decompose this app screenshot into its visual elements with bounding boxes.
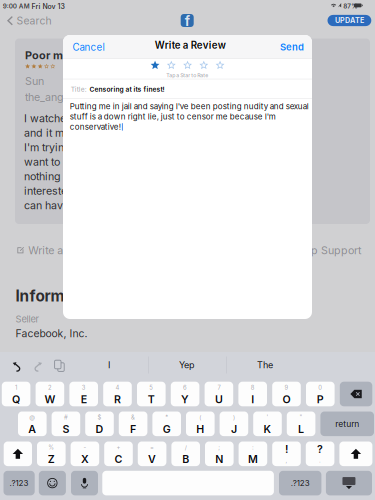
button[interactable]: I	[238, 382, 267, 406]
button[interactable]: !	[272, 441, 301, 466]
staticText: Fri Nov 13	[31, 2, 64, 11]
staticText: the_angry_birdman	[25, 91, 120, 104]
button[interactable]: Cancel	[72, 40, 104, 55]
button[interactable]: G	[152, 411, 181, 436]
button[interactable]: Send	[280, 40, 304, 55]
button[interactable]: P	[306, 382, 335, 406]
button[interactable]: B	[171, 441, 200, 466]
staticText: nothing changes, there has never been a …	[24, 170, 277, 183]
staticText: $	[97, 414, 101, 421]
staticText: 3	[82, 384, 86, 391]
button[interactable]: Delete	[340, 382, 372, 406]
button[interactable]: App Support	[297, 244, 361, 256]
staticText: (	[199, 414, 201, 421]
staticText: stuff is a down right lie, just to censo…	[70, 112, 276, 121]
button[interactable]: Shift	[4, 441, 32, 466]
staticText: J	[231, 423, 237, 436]
button[interactable]: Emoji	[39, 471, 66, 495]
staticText: R	[114, 393, 121, 406]
staticText: I	[108, 359, 110, 370]
button[interactable]: Y	[171, 382, 199, 406]
staticText: 7	[217, 384, 220, 391]
staticText: Tap a Star to Rate	[166, 72, 208, 78]
staticText: )	[233, 414, 235, 421]
staticText: conservative!	[70, 122, 121, 132]
staticText: !	[285, 442, 288, 455]
button[interactable]: D	[85, 411, 114, 436]
button[interactable]: Undo	[11, 359, 22, 372]
button[interactable]: I	[70, 352, 148, 378]
staticText: can have my account back if they steal i…	[24, 199, 264, 212]
staticText: ,	[285, 457, 287, 464]
button[interactable]: J	[220, 411, 248, 436]
staticText: .	[319, 457, 321, 464]
staticText: A	[28, 423, 36, 436]
staticText: and it made me wonder why there is no mo…	[24, 126, 275, 139]
button[interactable]: R	[103, 382, 132, 406]
staticText: "	[300, 414, 303, 421]
button[interactable]: Shift	[339, 441, 372, 466]
button[interactable]: V	[138, 441, 166, 466]
button[interactable]: Q	[2, 382, 30, 406]
button[interactable]: H	[186, 411, 215, 436]
staticText: return	[335, 419, 359, 429]
staticText: +	[116, 444, 120, 451]
button[interactable]: N	[205, 441, 234, 466]
button[interactable]: Z	[37, 441, 66, 466]
staticText: F	[130, 423, 136, 436]
staticText: V	[148, 453, 156, 466]
staticText: I watched a video on this app today and …	[24, 112, 283, 125]
staticText: &	[131, 414, 135, 421]
staticText: Putting me in jail and saying I've been …	[70, 101, 309, 111]
button[interactable]: Paste	[53, 359, 63, 370]
button[interactable]: The	[226, 352, 304, 378]
staticText: 9	[284, 384, 288, 391]
button[interactable]: Hide Keyboard	[326, 471, 372, 495]
button[interactable]: Search	[7, 14, 51, 27]
staticText: L	[298, 423, 304, 436]
button[interactable]: F	[119, 411, 147, 436]
button[interactable]: X	[71, 441, 99, 466]
staticText: Yep	[179, 359, 195, 370]
button[interactable]: UPDATE	[327, 15, 371, 26]
button[interactable]: return	[320, 411, 374, 436]
staticText: E	[81, 393, 87, 406]
staticText: #	[64, 414, 68, 421]
staticText: Send	[280, 41, 304, 53]
staticText: B	[182, 453, 189, 466]
button[interactable]: C	[104, 441, 133, 466]
button[interactable]: Redo	[32, 359, 43, 372]
staticText: Seller	[15, 313, 39, 325]
staticText: G	[163, 423, 171, 436]
button[interactable]: S	[52, 411, 80, 436]
button[interactable]: E	[69, 382, 98, 406]
staticText: Y	[181, 393, 189, 406]
button[interactable]: K	[253, 411, 282, 436]
staticText: Sun	[25, 75, 44, 87]
staticText: Q	[12, 393, 20, 406]
button[interactable]: M	[239, 441, 267, 466]
staticText: I	[251, 393, 254, 406]
staticText: '	[266, 414, 268, 421]
button[interactable]: T	[137, 382, 166, 406]
button[interactable]: Dictate	[71, 471, 98, 495]
button[interactable]: ?	[306, 441, 334, 466]
button[interactable]: Write a Review	[17, 244, 103, 256]
staticText: want to let people post whatever they li…	[24, 155, 287, 168]
staticText: X	[81, 453, 89, 466]
button[interactable]: A	[18, 411, 47, 436]
staticText: S	[62, 423, 69, 436]
button[interactable]: Yep	[148, 352, 226, 378]
button[interactable]: .?123	[279, 471, 321, 495]
button[interactable]: O	[272, 382, 301, 406]
button[interactable]: W	[36, 382, 64, 406]
button[interactable]: .?123	[3, 471, 35, 495]
staticText: Title:	[71, 85, 87, 93]
staticText: Z	[48, 453, 55, 466]
staticText: interested in keeping hateful posts off …	[24, 184, 270, 197]
button[interactable]: U	[205, 382, 233, 406]
button[interactable]: L	[287, 411, 315, 436]
staticText: @	[29, 414, 35, 421]
staticText: Cancel	[72, 41, 104, 53]
